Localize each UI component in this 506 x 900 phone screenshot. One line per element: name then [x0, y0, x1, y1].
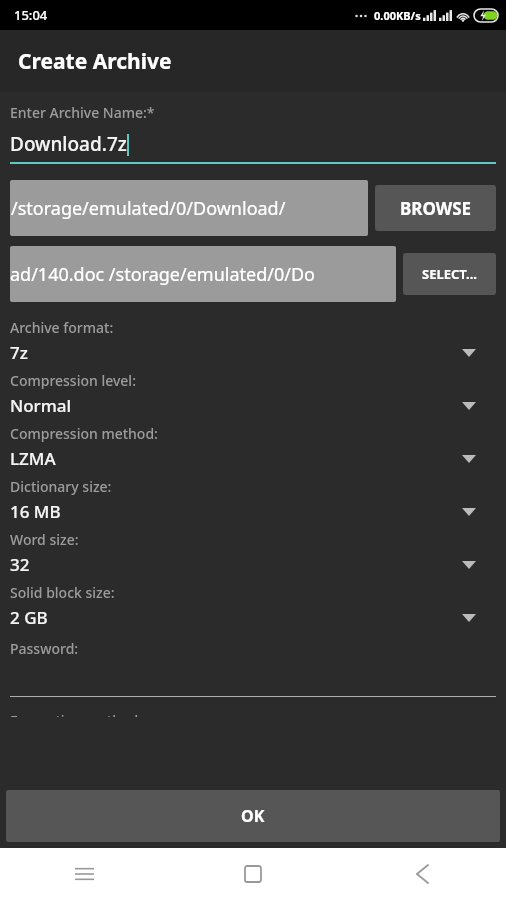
staticText: Download.7z — [10, 131, 127, 157]
button[interactable]: SELECT... — [403, 253, 496, 295]
button[interactable]: Home — [229, 850, 277, 898]
other: Open Archive format: dropdown — [462, 349, 476, 357]
staticText: ad/140.doc /storage/emulated/0/Do — [10, 262, 315, 287]
button[interactable]: BROWSE — [375, 185, 496, 231]
staticText: Compression method: — [10, 424, 158, 443]
staticText: Compression level: — [10, 371, 136, 390]
staticText: BROWSE — [400, 197, 472, 220]
button[interactable]: Solid block size: — [10, 583, 496, 636]
staticText: SELECT... — [422, 265, 478, 283]
button[interactable]: OK — [6, 790, 500, 842]
other: Open Compression method: dropdown — [462, 455, 476, 463]
staticText: Solid block size: — [10, 583, 115, 602]
button[interactable]: Archive format: — [10, 318, 496, 371]
other: Open Word size: dropdown — [462, 561, 476, 569]
staticText: Dictionary size: — [10, 477, 112, 496]
staticText: Encryption method: — [10, 711, 143, 717]
staticText: /storage/emulated/0/Download/ — [11, 196, 286, 221]
staticText: Word size: — [10, 530, 79, 549]
other: Open Dictionary size: dropdown — [462, 508, 476, 516]
staticText: Normal — [10, 394, 462, 417]
staticText: 32 — [10, 553, 462, 576]
button[interactable]: Download.7z — [10, 131, 496, 164]
other: Open Solid block size: dropdown — [462, 614, 476, 622]
staticText: LZMA — [10, 447, 462, 470]
button[interactable]: Compression method: — [10, 424, 496, 477]
staticText: 2 GB — [10, 606, 462, 629]
button[interactable]: Recent apps — [60, 850, 108, 898]
staticText: Create Archive — [18, 47, 172, 76]
staticText: 7z — [10, 341, 462, 364]
staticText: 16 MB — [10, 500, 462, 523]
staticText: Password: — [10, 639, 79, 658]
button[interactable]: /storage/emulated/0/Download/ — [10, 180, 368, 236]
staticText: 15:04 — [14, 6, 48, 24]
button[interactable]: ad/140.doc /storage/emulated/0/Do — [10, 246, 396, 302]
button[interactable]: Compression level: — [10, 371, 496, 424]
button[interactable]: Word size: — [10, 530, 496, 583]
other: Open Compression level: dropdown — [462, 402, 476, 410]
button[interactable]: Back — [398, 850, 446, 898]
staticText: Enter Archive Name:* — [10, 103, 155, 122]
staticText: Archive format: — [10, 318, 114, 337]
button[interactable]: Dictionary size: — [10, 477, 496, 530]
staticText: OK — [241, 805, 265, 827]
staticText: 0.00KB/s — [374, 8, 421, 23]
